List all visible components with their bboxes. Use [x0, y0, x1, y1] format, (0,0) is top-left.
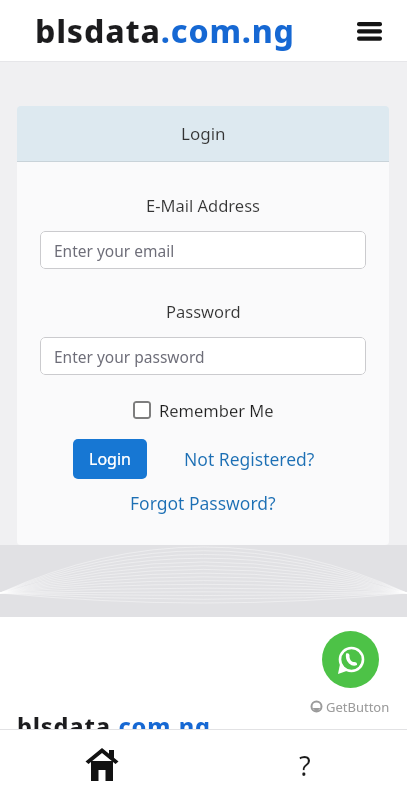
staticText: E-Mail Address [146, 194, 260, 216]
staticText: blsdata.com.ng [17, 710, 211, 729]
staticText: GetButton [326, 698, 390, 716]
staticText: Enter your email [54, 240, 175, 261]
button[interactable]: Forgot Password? [130, 491, 276, 515]
button[interactable] [349, 11, 389, 51]
staticText: Login [89, 448, 131, 470]
staticText: Login [181, 122, 226, 145]
button[interactable]: GetButton [310, 698, 390, 716]
button[interactable] [0, 730, 203, 800]
staticText: Remember Me [159, 399, 274, 421]
button[interactable]: ? [203, 730, 407, 800]
staticText: Enter your password [54, 346, 205, 367]
button[interactable]: Login [73, 439, 147, 479]
button[interactable]: blsdata.com.ng [35, 9, 295, 53]
staticText: Password [166, 300, 241, 322]
button[interactable]: Remember Me [133, 399, 274, 421]
button[interactable]: Enter your email [40, 231, 366, 269]
button[interactable] [322, 631, 379, 688]
button[interactable]: Enter your password [40, 337, 366, 375]
staticText: blsdata.com.ng [35, 9, 295, 53]
button[interactable]: Not Registered? [184, 447, 315, 471]
staticText: ? [299, 747, 311, 784]
